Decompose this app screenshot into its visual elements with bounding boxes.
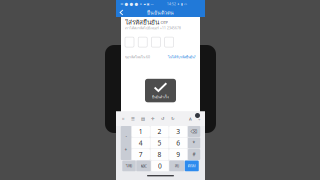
staticText: 3 [176, 127, 180, 136]
button[interactable]: Keyboard tool [168, 111, 178, 126]
button[interactable]: ไทย [122, 160, 136, 171]
staticText: 9 [176, 150, 180, 159]
staticText: # [192, 151, 195, 158]
button[interactable]: Keyboard tool [148, 111, 158, 126]
button[interactable]: Keyboard tool [128, 111, 138, 126]
staticText: ยืนยันตัวตน [147, 8, 174, 17]
button[interactable]: ลบ [169, 160, 184, 171]
button[interactable]: 5 [150, 137, 169, 148]
button[interactable]: Keyboard tool [118, 111, 128, 126]
staticText: 6 [176, 138, 180, 148]
button[interactable]: 9 [169, 149, 187, 160]
staticText: ☰ [131, 116, 135, 121]
button[interactable]: 3 [169, 126, 187, 137]
staticText: ยืนยันสำเร็จ [152, 94, 169, 100]
button[interactable]: 1 [132, 126, 150, 137]
button[interactable]: Hide keyboard [195, 111, 204, 126]
button[interactable]: Back [116, 8, 127, 17]
staticText: A [189, 116, 192, 122]
button[interactable]: ไม่ได้รับรหัสยืนยัน? [168, 54, 196, 60]
button[interactable]: 2 [150, 126, 169, 137]
button[interactable]: Keyboard tool [158, 111, 168, 126]
staticText: เราได้ส่งรหัสไปยังเบอร์ +11 2345678 [125, 25, 181, 31]
staticText: ABC [140, 163, 146, 169]
staticText: ⌗ [122, 117, 124, 121]
staticText: OTP [160, 19, 168, 25]
staticText: ⌫ [190, 129, 197, 134]
button[interactable]: ตกลง [185, 160, 199, 171]
staticText: ลบ [175, 163, 179, 169]
staticText: ตกลง [188, 163, 196, 169]
staticText: 14:52 ✦ ▮ ▭ [167, 2, 187, 6]
staticText: ✉ ⬤ ⬤ ⬤ ✦ ▰ ▣ — [120, 2, 153, 6]
staticText: ไม่ได้รับรหัสยืนยัน? [168, 54, 196, 60]
button[interactable]: 8 [150, 149, 169, 160]
button[interactable]: * [188, 137, 200, 148]
staticText: 8 [157, 150, 161, 159]
button[interactable]: Font [186, 111, 195, 126]
button[interactable]: ⌫ [188, 126, 200, 137]
staticText: 1 [139, 127, 143, 136]
staticText: + [124, 147, 127, 153]
button[interactable]: Keyboard tool [138, 111, 148, 126]
staticText: 0 [158, 161, 162, 171]
staticText: ขอรหัสใหม่ใน 60 [125, 54, 150, 60]
staticText: ไทย [126, 163, 132, 169]
staticText: 2 [157, 127, 161, 136]
button[interactable]: # [188, 149, 200, 160]
button[interactable]: 7 [132, 149, 150, 160]
staticText: ▤ [141, 116, 145, 121]
button[interactable]: 6 [169, 137, 187, 148]
staticText: ⌄ [197, 116, 201, 121]
button[interactable]: 0 [151, 160, 169, 171]
staticText: ↺ [161, 116, 165, 121]
staticText: 4 [139, 138, 143, 148]
staticText: 5 [157, 138, 161, 148]
staticText: ใส่รหัสยืนยัน [125, 17, 159, 27]
button[interactable]: 4 [132, 137, 150, 148]
staticText: * [192, 140, 195, 146]
staticText: ↻ [171, 116, 175, 121]
button[interactable]: ABC [136, 160, 151, 171]
staticText: 7 [139, 150, 143, 159]
staticText: ✛ [151, 116, 155, 121]
